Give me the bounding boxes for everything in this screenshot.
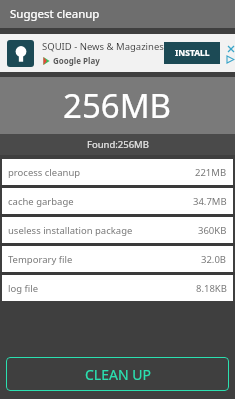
button[interactable]: Temporary file bbox=[2, 246, 233, 272]
staticText: 256MB bbox=[63, 83, 172, 128]
staticText: cache garbage bbox=[8, 195, 74, 208]
button[interactable]: log file bbox=[2, 275, 233, 301]
staticText: process cleanup bbox=[8, 166, 81, 179]
staticText: 221MB bbox=[195, 166, 227, 179]
staticText: 360KB bbox=[198, 224, 227, 237]
staticText: 34.7MB bbox=[193, 195, 227, 208]
button[interactable]: cache garbage bbox=[2, 188, 233, 214]
staticText: log file bbox=[8, 282, 39, 295]
staticText: Found:256MB bbox=[87, 138, 149, 151]
staticText: SQUID - News & Magazines bbox=[42, 40, 164, 53]
staticText: Google Play bbox=[53, 55, 100, 66]
staticText: INSTALL bbox=[175, 47, 210, 59]
staticText: CLEAN UP bbox=[85, 365, 151, 384]
button[interactable]: Close ad bbox=[226, 44, 235, 53]
staticText: Temporary file bbox=[8, 253, 73, 266]
staticText: useless installation package bbox=[8, 224, 133, 237]
button[interactable]: SQUID - News & Magazines bbox=[0, 34, 235, 72]
button[interactable]: process cleanup bbox=[2, 159, 233, 185]
button[interactable]: useless installation package bbox=[2, 217, 233, 243]
staticText: Suggest cleanup bbox=[10, 6, 100, 22]
button[interactable]: CLEAN UP bbox=[6, 357, 229, 391]
staticText: 32.0B bbox=[201, 253, 227, 266]
button[interactable]: INSTALL bbox=[164, 42, 220, 64]
staticText: 8.18KB bbox=[196, 282, 227, 295]
